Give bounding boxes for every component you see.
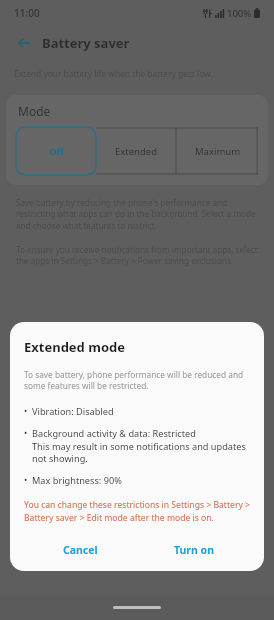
- staticText: •: [24, 405, 28, 417]
- staticText: Max brightness: 90%: [32, 474, 122, 487]
- staticText: Extended: [115, 145, 158, 158]
- staticText: To ensure you receive notifications from…: [16, 244, 258, 267]
- button[interactable]: Back: [10, 29, 38, 57]
- staticText: Maximum: [195, 145, 241, 158]
- button[interactable]: Maximum: [177, 127, 258, 175]
- staticText: Extend your battery life when the batter…: [14, 68, 213, 79]
- staticText: Extended mode: [24, 338, 125, 356]
- staticText: 11:00: [14, 6, 40, 20]
- staticText: Background activity & data: Restricted T…: [32, 427, 250, 465]
- staticText: Cancel: [63, 543, 98, 557]
- staticText: Save battery by reducing the phone's per…: [16, 197, 258, 232]
- staticText: Mode: [18, 103, 51, 119]
- staticText: •: [24, 427, 28, 439]
- button[interactable]: Turn on: [137, 535, 250, 565]
- button[interactable]: Off: [16, 127, 96, 175]
- staticText: Battery saver: [42, 34, 130, 52]
- button[interactable]: Cancel: [24, 535, 137, 565]
- staticText: Off: [49, 145, 64, 158]
- staticText: 100%: [227, 7, 252, 20]
- staticText: To save battery, phone performance will …: [24, 369, 250, 392]
- staticText: Turn on: [174, 543, 214, 557]
- staticText: You can change these restrictions in Set…: [24, 499, 250, 523]
- staticText: •: [24, 474, 28, 486]
- staticText: Vibration: Disabled: [32, 405, 114, 418]
- button[interactable]: Extended: [96, 127, 177, 175]
